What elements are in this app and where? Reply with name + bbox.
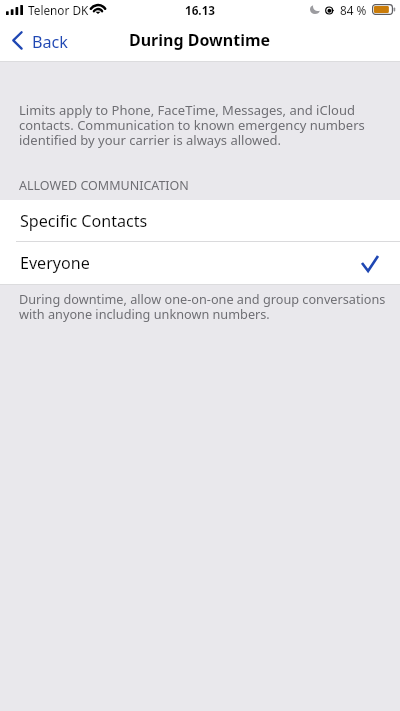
- staticText: During downtime, allow one-on-one and gr…: [19, 290, 394, 323]
- staticText: 16.13: [185, 2, 216, 18]
- staticText: Specific Contacts: [20, 210, 148, 232]
- staticText: Limits apply to Phone, FaceTime, Message…: [19, 101, 378, 149]
- staticText: Telenor DK: [28, 2, 89, 18]
- button[interactable]: Specific Contacts: [0, 200, 400, 241]
- staticText: During Downtime: [129, 29, 271, 51]
- staticText: Back: [32, 31, 69, 53]
- staticText: 84 %: [340, 2, 367, 18]
- button[interactable]: Everyone: [0, 242, 400, 284]
- button[interactable]: Back: [8, 26, 74, 62]
- staticText: Everyone: [20, 252, 90, 274]
- staticText: ALLOWED COMMUNICATION: [19, 177, 189, 194]
